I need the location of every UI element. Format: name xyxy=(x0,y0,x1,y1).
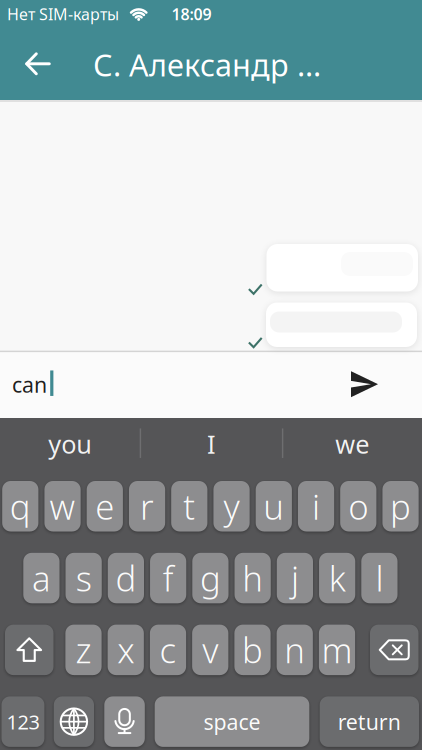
staticText: l xyxy=(375,555,383,601)
staticText: Нет SIM-карты xyxy=(7,3,119,25)
button[interactable]: w xyxy=(44,481,81,531)
staticText: s xyxy=(76,555,92,601)
staticText: space xyxy=(203,707,260,736)
staticText: d xyxy=(115,555,136,601)
staticText: С. Александр ... xyxy=(93,44,321,85)
button[interactable]: r xyxy=(129,481,165,531)
button[interactable]: l xyxy=(361,553,397,603)
button[interactable]: u xyxy=(256,481,292,531)
button[interactable]: Send xyxy=(334,355,394,413)
button[interactable]: k xyxy=(319,553,355,603)
staticText: a xyxy=(32,555,51,601)
staticText: x xyxy=(117,627,134,673)
button[interactable]: o xyxy=(340,481,376,531)
staticText: y xyxy=(223,483,239,529)
button[interactable]: c xyxy=(150,625,186,675)
staticText: return xyxy=(338,707,401,736)
button[interactable]: i xyxy=(298,481,334,531)
staticText: k xyxy=(329,555,346,601)
staticText: g xyxy=(200,555,221,601)
button[interactable]: I xyxy=(141,417,281,471)
button[interactable]: space xyxy=(155,696,309,747)
staticText: I xyxy=(207,427,216,461)
staticText: w xyxy=(50,483,76,529)
button[interactable]: t xyxy=(171,481,207,531)
button[interactable]: p xyxy=(382,481,419,531)
staticText: n xyxy=(284,627,305,673)
button[interactable]: Delete xyxy=(370,625,418,675)
button[interactable]: m xyxy=(319,625,355,675)
button[interactable]: x xyxy=(108,625,144,675)
staticText: f xyxy=(163,555,174,601)
button[interactable]: d xyxy=(108,553,144,603)
staticText: q xyxy=(10,483,31,529)
button[interactable]: Next keyboard xyxy=(54,696,94,747)
staticText: 18:09 xyxy=(172,3,212,25)
button[interactable]: j xyxy=(277,553,313,603)
button[interactable]: we xyxy=(283,417,422,471)
staticText: z xyxy=(75,627,91,673)
button[interactable]: 123 xyxy=(1,696,44,747)
button[interactable]: z xyxy=(65,625,102,675)
button[interactable]: Dictate xyxy=(104,696,145,747)
button[interactable]: q xyxy=(2,481,38,531)
button[interactable]: n xyxy=(277,625,313,675)
button[interactable]: Back xyxy=(16,42,60,86)
staticText: you xyxy=(48,427,92,461)
button[interactable]: you xyxy=(0,417,140,471)
button[interactable]: h xyxy=(235,553,271,603)
staticText: e xyxy=(95,483,114,529)
button[interactable]: Shift xyxy=(5,625,53,675)
staticText: we xyxy=(335,427,369,461)
button[interactable]: y xyxy=(213,481,250,531)
staticText: v xyxy=(202,627,218,673)
staticText: can xyxy=(12,370,47,399)
staticText: h xyxy=(242,555,263,601)
staticText: 123 xyxy=(6,708,39,735)
staticText: t xyxy=(183,483,195,529)
staticText: i xyxy=(312,483,320,529)
staticText: m xyxy=(321,627,352,673)
button[interactable]: g xyxy=(192,553,228,603)
button[interactable]: b xyxy=(234,625,271,675)
button[interactable]: f xyxy=(150,553,186,603)
staticText: j xyxy=(291,555,299,601)
staticText: u xyxy=(263,483,284,529)
staticText: b xyxy=(242,627,263,673)
button[interactable]: a xyxy=(23,553,59,603)
button[interactable]: e xyxy=(87,481,123,531)
staticText: p xyxy=(390,483,411,529)
button[interactable]: v xyxy=(192,625,228,675)
button[interactable]: return xyxy=(320,696,419,747)
staticText: c xyxy=(159,627,176,673)
button[interactable]: s xyxy=(66,553,102,603)
staticText: r xyxy=(140,483,154,529)
staticText: o xyxy=(348,483,368,529)
